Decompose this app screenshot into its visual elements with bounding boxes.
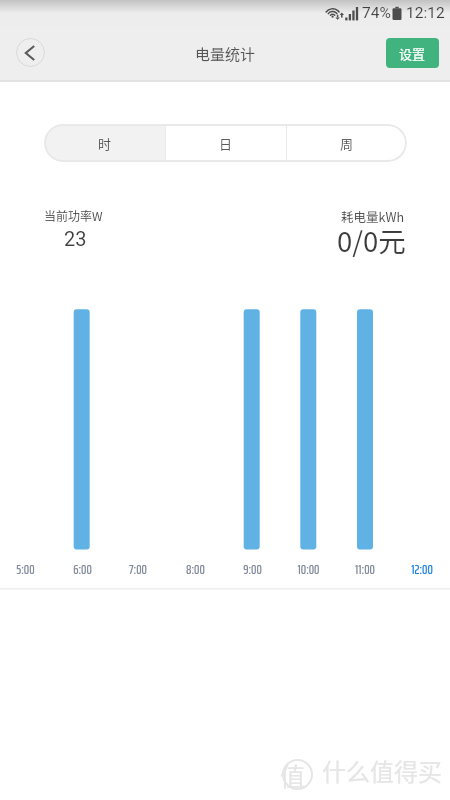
staticText: 10:00 <box>297 559 320 580</box>
staticText: 周 <box>340 134 354 153</box>
staticText: 23 <box>64 227 87 250</box>
button[interactable]: 日 <box>166 124 286 162</box>
button[interactable]: 设置 <box>386 38 439 68</box>
staticText: 7:00 <box>129 559 147 580</box>
button[interactable]: 周 <box>287 124 407 162</box>
staticText: 9:00 <box>243 559 262 580</box>
button[interactable]: Back <box>16 38 45 67</box>
staticText: 设置 <box>399 44 426 63</box>
staticText: 8:00 <box>186 559 205 580</box>
staticText: 11:00 <box>355 559 375 580</box>
button[interactable]: 时 <box>44 124 165 162</box>
staticText: 什么值得买 <box>322 753 442 788</box>
staticText: 12:12 <box>406 4 445 22</box>
staticText: 12:00 <box>411 559 433 580</box>
staticText: 时 <box>98 134 112 153</box>
staticText: 0/0元 <box>337 220 406 260</box>
staticText: 值 <box>280 757 306 793</box>
staticText: 5:00 <box>16 559 35 580</box>
staticText: 6:00 <box>73 559 92 580</box>
staticText: 耗电量kWh <box>341 207 404 225</box>
staticText: 电量统计 <box>195 43 256 65</box>
staticText: 74% <box>362 4 391 22</box>
staticText: 日 <box>219 134 233 153</box>
staticText: 当前功率W <box>44 207 103 224</box>
